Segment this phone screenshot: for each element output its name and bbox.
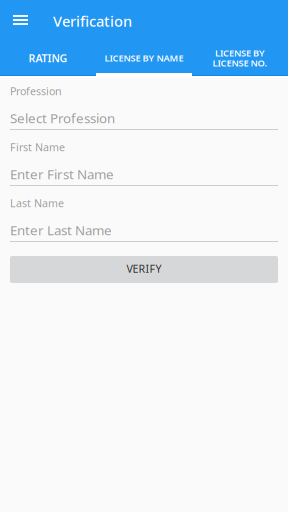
staticText: Verification (53, 11, 132, 31)
staticText: LICENSE BY (215, 47, 265, 59)
staticText: First Name (10, 140, 65, 154)
button[interactable]: VERIFY (10, 256, 278, 283)
button[interactable]: Open navigation menu (13, 0, 28, 42)
staticText: Last Name (10, 196, 64, 210)
staticText: Enter Last Name (10, 221, 112, 239)
staticText: Select Profession (10, 109, 115, 127)
staticText: VERIFY (126, 261, 161, 276)
button[interactable]: LICENSE BY NAME (96, 42, 192, 76)
staticText: LICENSE BY NAME (104, 52, 183, 64)
staticText: Enter First Name (10, 165, 114, 183)
staticText: RATING (28, 51, 67, 65)
button[interactable]: LICENSE BY (192, 42, 288, 76)
staticText: Profession (10, 84, 62, 98)
button[interactable]: RATING (0, 42, 96, 76)
staticText: LICENSE NO. (212, 57, 267, 69)
